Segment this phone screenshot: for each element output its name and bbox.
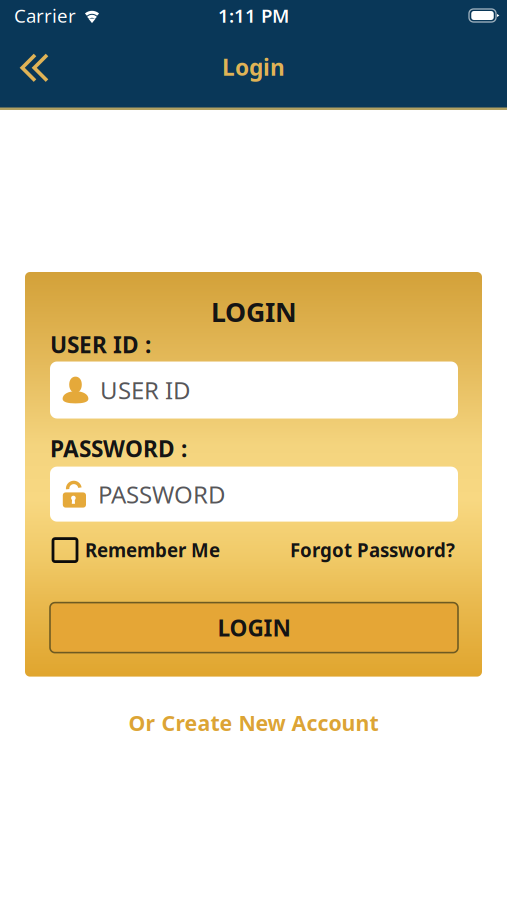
button[interactable]: Forgot Password? <box>290 539 458 562</box>
button[interactable]: Remember Me <box>50 539 220 562</box>
staticText: LOGIN <box>217 613 290 643</box>
staticText: 1:11 PM <box>218 3 289 28</box>
button[interactable]: Back <box>0 31 65 110</box>
staticText: Remember Me <box>85 538 220 562</box>
staticText: PASSWORD : <box>50 433 187 464</box>
staticText: Forgot Password? <box>290 538 455 562</box>
button[interactable]: Or Create New Account <box>128 709 378 737</box>
staticText: Login <box>222 52 285 82</box>
staticText: Carrier <box>14 3 76 28</box>
staticText: PASSWORD <box>98 478 226 510</box>
staticText: USER ID : <box>50 329 151 359</box>
button[interactable]: LOGIN <box>50 603 458 653</box>
staticText: USER ID <box>100 374 191 406</box>
staticText: Or Create New Account <box>128 709 378 737</box>
staticText: LOGIN <box>211 294 297 329</box>
